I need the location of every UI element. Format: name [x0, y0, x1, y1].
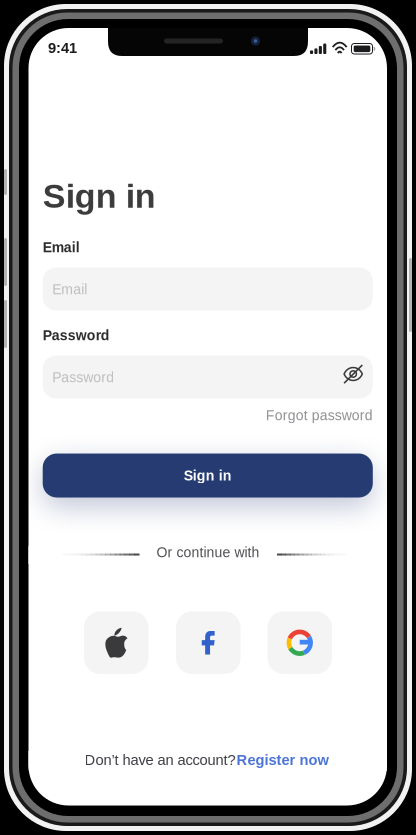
button[interactable]: Register now [236, 752, 336, 768]
staticText: 9:41 [48, 40, 77, 56]
staticText: Forgot password [266, 408, 373, 423]
button[interactable]: Sign in with Google [267, 611, 332, 674]
button[interactable]: Show password [329, 355, 373, 398]
staticText: Password [52, 370, 114, 385]
button[interactable]: Sign in with Facebook [176, 611, 240, 674]
staticText: Sign in [43, 177, 156, 215]
staticText: Or continue with [156, 545, 259, 560]
button[interactable]: Sign in [43, 453, 373, 497]
staticText: Email [43, 240, 80, 255]
staticText: Don’t have an account? [84, 752, 235, 768]
button[interactable]: Sign in with Apple [84, 611, 148, 674]
button[interactable]: Forgot password [43, 405, 373, 425]
staticText: Email [52, 282, 87, 297]
staticText: Password [43, 328, 110, 343]
staticText: Register now [236, 752, 328, 768]
staticText: Sign in [184, 468, 232, 483]
